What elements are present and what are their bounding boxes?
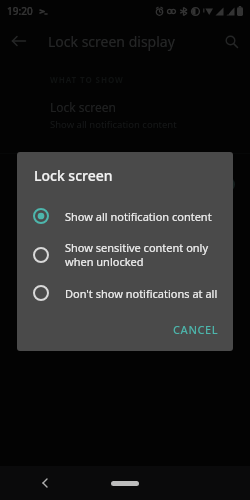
- staticText: Show all notification content: [65, 209, 212, 224]
- button[interactable]: Back: [0, 22, 38, 60]
- staticText: Lock screen display: [48, 32, 212, 51]
- staticText: Don't show notifications at all: [65, 286, 218, 301]
- staticText: WHAT TO SHOW: [50, 74, 124, 85]
- staticText: Lock screen: [34, 166, 113, 185]
- button[interactable]: CANCEL: [159, 314, 233, 345]
- button[interactable]: Lock screen: [0, 99, 250, 131]
- staticText: Show all notification content: [50, 118, 177, 131]
- staticText: Lock screen: [50, 99, 117, 115]
- staticText: Wake screen when you receive notificatio…: [50, 170, 198, 198]
- staticText: 19:20: [7, 4, 33, 18]
- button[interactable]: Home: [111, 481, 139, 486]
- staticText: CANCEL: [173, 322, 219, 337]
- button[interactable]: Wake screen when you receive notificatio…: [0, 170, 250, 198]
- button[interactable]: Back: [34, 471, 58, 495]
- button[interactable]: Show sensitive content only when unlocke…: [17, 233, 233, 276]
- button[interactable]: Show all notification content: [17, 199, 233, 233]
- button[interactable]: Don't show notifications at all: [17, 276, 233, 310]
- button[interactable]: Search: [212, 22, 250, 60]
- staticText: Show sensitive content only when unlocke…: [65, 240, 209, 269]
